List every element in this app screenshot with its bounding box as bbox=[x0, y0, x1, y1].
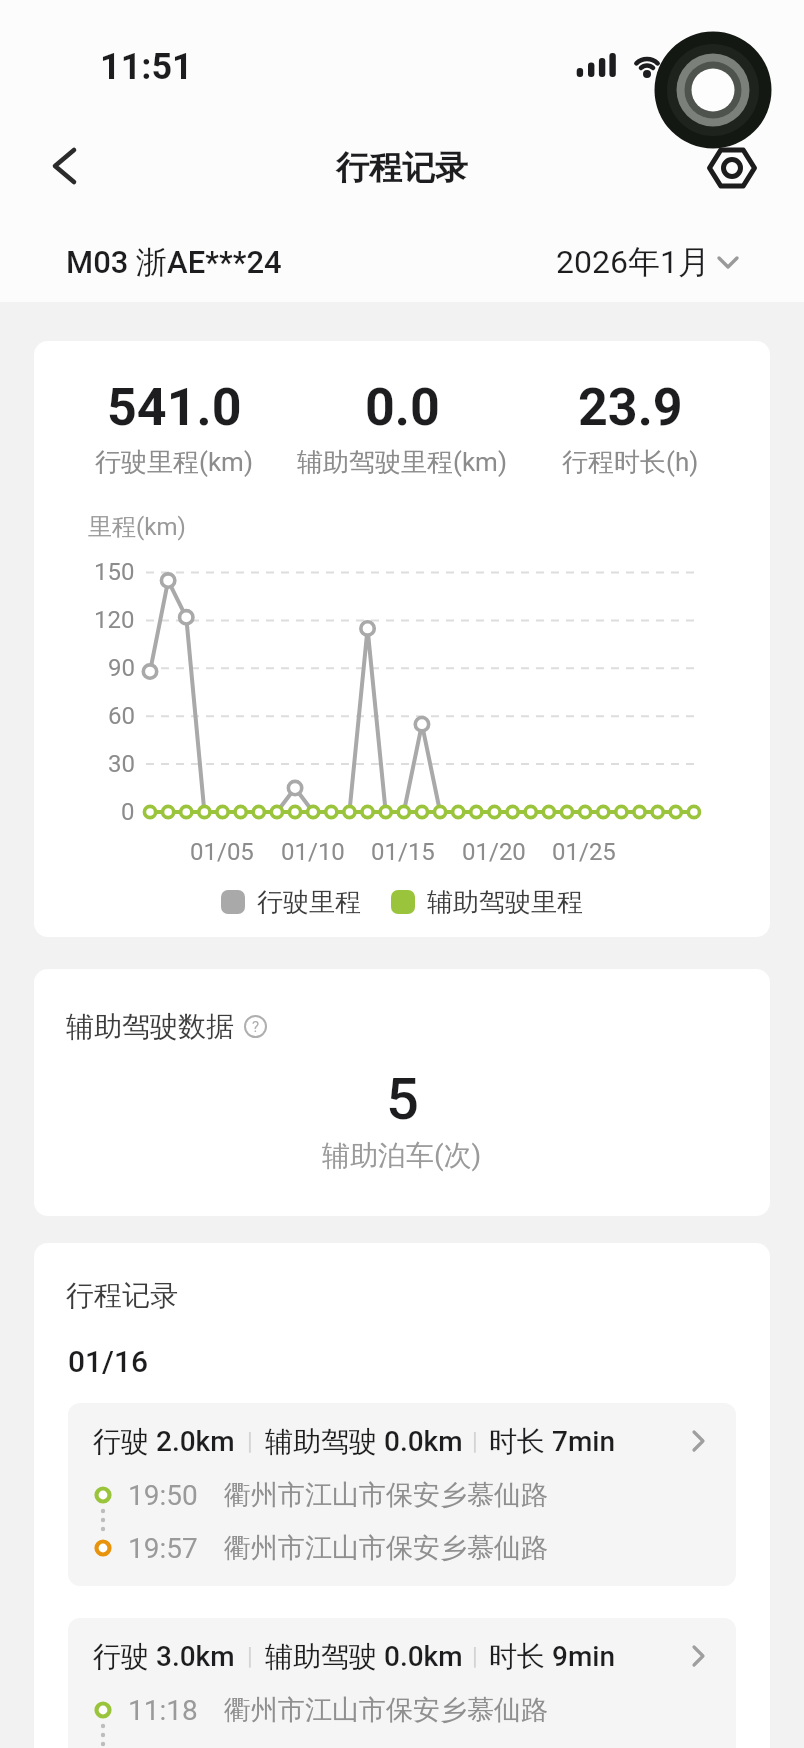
staticText: 5 bbox=[386, 1065, 419, 1133]
staticText: 0.0 bbox=[365, 377, 440, 438]
staticText: 辅助驾驶里程(km) bbox=[297, 446, 507, 479]
staticText: 行程时长(h) bbox=[562, 446, 699, 479]
staticText: 90 bbox=[108, 654, 135, 682]
staticText: 19:50 bbox=[128, 1479, 198, 1512]
staticText: 150 bbox=[94, 558, 135, 586]
staticText: 里程(km) bbox=[88, 512, 186, 542]
staticText: | bbox=[472, 1428, 478, 1455]
staticText: 行程记录 bbox=[66, 1278, 178, 1313]
staticText: 时长 9min bbox=[489, 1639, 615, 1674]
staticText: | bbox=[247, 1643, 253, 1670]
staticText: 行驶 2.0km bbox=[93, 1424, 235, 1459]
staticText: 01/15 bbox=[371, 838, 435, 866]
staticText: 衢州市江山市保安乡慕仙路 bbox=[224, 1531, 548, 1565]
staticText: | bbox=[247, 1428, 253, 1455]
staticText: 01/16 bbox=[68, 1344, 149, 1379]
staticText: 01/05 bbox=[190, 838, 254, 866]
staticText: 0 bbox=[121, 798, 135, 826]
staticText: 时长 7min bbox=[489, 1424, 615, 1459]
staticText: | bbox=[472, 1643, 478, 1670]
staticText: 行驶里程 bbox=[257, 886, 361, 919]
staticText: 行驶里程(km) bbox=[95, 446, 253, 479]
staticText: 辅助泊车(次) bbox=[322, 1138, 482, 1173]
staticText: 30 bbox=[108, 750, 135, 778]
staticText: 120 bbox=[94, 606, 135, 634]
staticText: M03 浙AE***24 bbox=[66, 243, 282, 282]
button[interactable] bbox=[38, 140, 94, 196]
button[interactable] bbox=[702, 141, 762, 195]
staticText: ? bbox=[252, 1018, 260, 1036]
staticText: 辅助驾驶 0.0km bbox=[265, 1639, 463, 1674]
staticText: 衢州市江山市保安乡慕仙路 bbox=[224, 1693, 548, 1727]
staticText: 辅助驾驶里程 bbox=[427, 886, 583, 919]
staticText: 行程记录 bbox=[336, 147, 468, 189]
staticText: 01/25 bbox=[552, 838, 616, 866]
button[interactable]: ? bbox=[244, 1015, 267, 1038]
staticText: 01/20 bbox=[462, 838, 526, 866]
staticText: 2026年1月 bbox=[556, 242, 710, 282]
button[interactable]: 行驶 3.0km bbox=[68, 1618, 736, 1748]
staticText: 60 bbox=[108, 702, 135, 730]
staticText: 辅助驾驶 0.0km bbox=[265, 1424, 463, 1459]
staticText: 11:18 bbox=[128, 1694, 198, 1727]
staticText: 541.0 bbox=[107, 377, 242, 438]
staticText: 11:51 bbox=[100, 46, 193, 84]
button[interactable]: 行驶 2.0km bbox=[68, 1403, 736, 1586]
staticText: 行驶 3.0km bbox=[93, 1639, 235, 1674]
staticText: 辅助驾驶数据 bbox=[66, 1009, 234, 1044]
staticText: 01/10 bbox=[281, 838, 345, 866]
button[interactable]: 2026年1月 bbox=[556, 242, 740, 282]
staticText: 衢州市江山市保安乡慕仙路 bbox=[224, 1478, 548, 1512]
staticText: 23.9 bbox=[578, 377, 683, 438]
staticText: 19:57 bbox=[128, 1532, 198, 1565]
